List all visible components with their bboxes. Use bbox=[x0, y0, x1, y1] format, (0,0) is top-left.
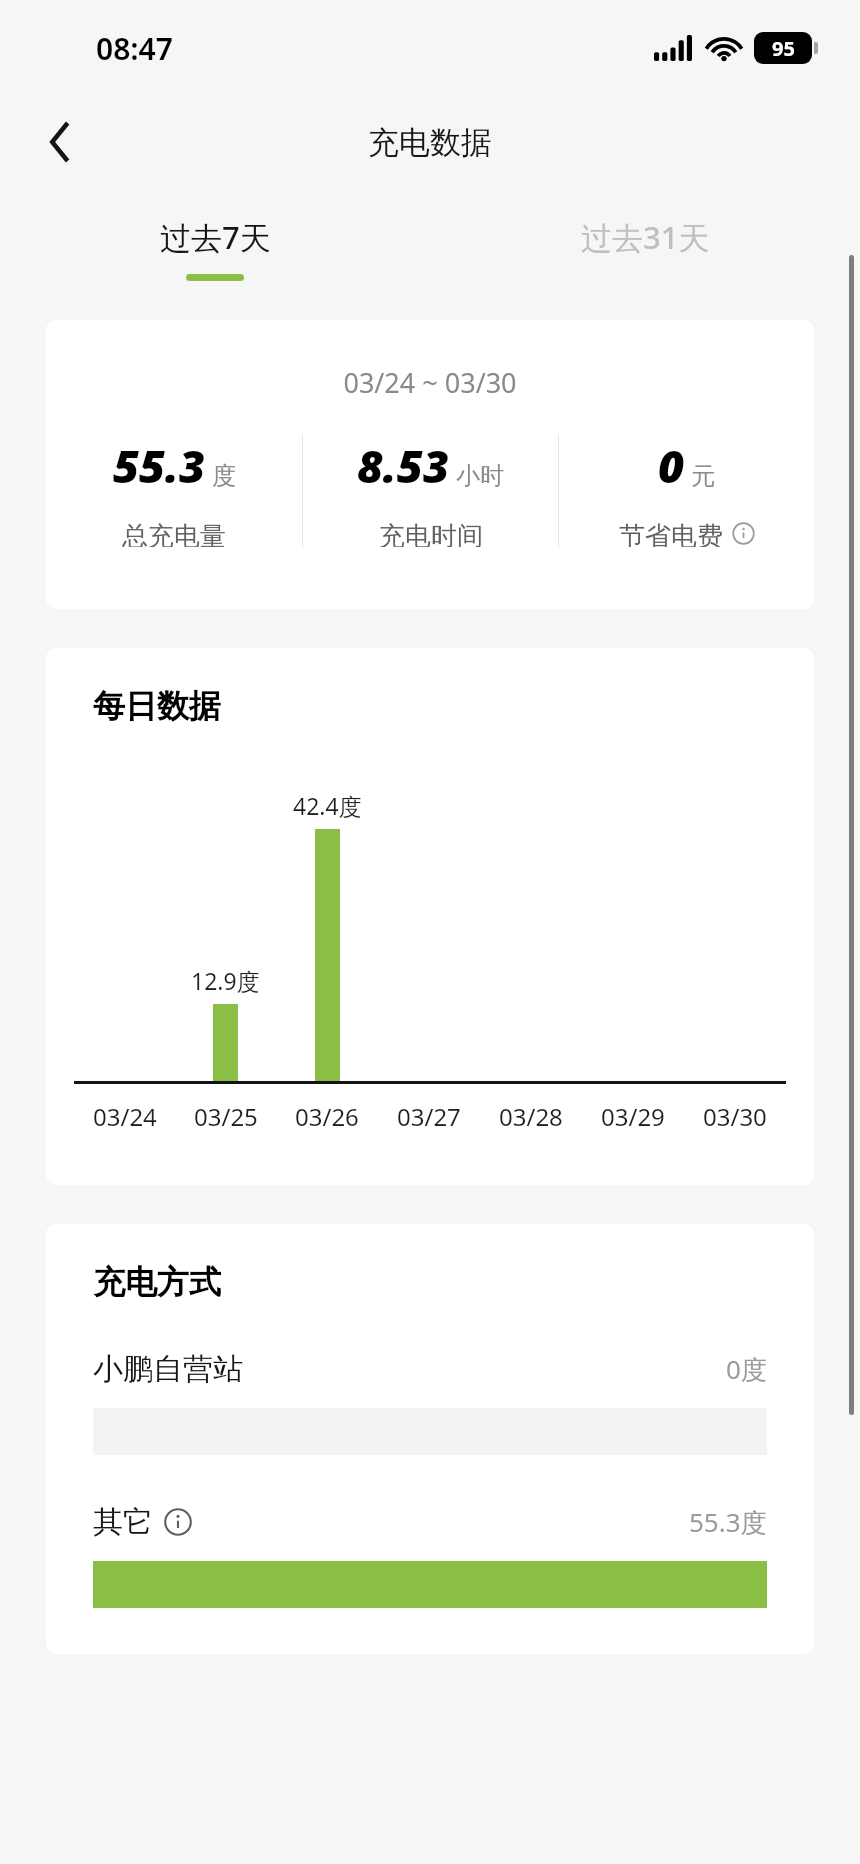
staticText: 03/26 bbox=[295, 1100, 359, 1133]
staticText: 12.9度 bbox=[191, 965, 260, 996]
button[interactable]: 55.3 bbox=[46, 435, 302, 547]
staticText: 03/29 bbox=[601, 1100, 665, 1133]
staticText: 03/24 ~ 03/30 bbox=[46, 364, 814, 401]
staticText: 03/30 bbox=[703, 1100, 767, 1133]
staticText: 总充电量 bbox=[122, 520, 226, 547]
staticText: 55.3度 bbox=[689, 1504, 767, 1540]
staticText: 充电时间 bbox=[379, 520, 483, 547]
staticText: 节省电费 bbox=[619, 520, 723, 547]
staticText: 充电数据 bbox=[368, 123, 492, 162]
button[interactable]: Back bbox=[26, 107, 96, 177]
staticText: 过去31天 bbox=[581, 216, 710, 258]
staticText: 8.53 bbox=[357, 435, 450, 496]
staticText: 08:47 bbox=[96, 28, 173, 69]
button[interactable]: 过去31天 bbox=[430, 188, 860, 298]
staticText: 每日数据 bbox=[93, 686, 221, 726]
staticText: 03/25 bbox=[194, 1100, 258, 1133]
staticText: 0度 bbox=[726, 1351, 767, 1387]
staticText: 42.4度 bbox=[293, 790, 362, 821]
staticText: 小时 bbox=[456, 461, 504, 491]
button[interactable]: 小鹏自营站 bbox=[93, 1350, 767, 1455]
staticText: 0 bbox=[658, 435, 685, 496]
staticText: 03/27 bbox=[397, 1100, 461, 1133]
staticText: 度 bbox=[212, 461, 236, 491]
staticText: 过去7天 bbox=[160, 216, 271, 258]
staticText: 03/28 bbox=[499, 1100, 563, 1133]
button[interactable]: 0 bbox=[559, 435, 814, 547]
button[interactable]: 过去7天 bbox=[0, 188, 430, 298]
staticText: 小鹏自营站 bbox=[93, 1350, 243, 1388]
button[interactable]: 其它 bbox=[93, 1503, 767, 1608]
staticText: 55.3 bbox=[113, 435, 206, 496]
button[interactable]: 8.53 bbox=[303, 435, 558, 547]
staticText: 其它 bbox=[93, 1503, 153, 1541]
staticText: 03/24 bbox=[93, 1100, 157, 1133]
staticText: 元 bbox=[691, 461, 715, 491]
staticText: 充电方式 bbox=[93, 1262, 221, 1302]
staticText: 95 bbox=[772, 35, 795, 62]
